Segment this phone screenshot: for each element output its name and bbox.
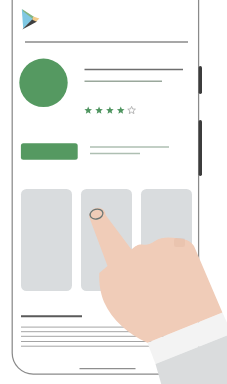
button[interactable]: Install app illustration — [0, 0, 227, 384]
